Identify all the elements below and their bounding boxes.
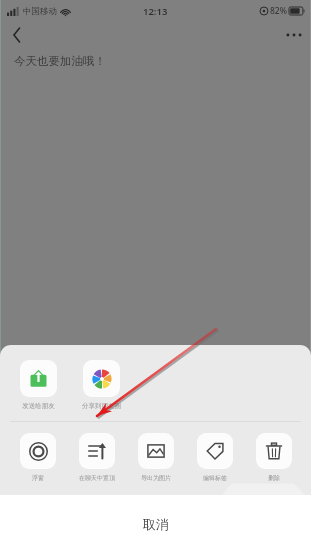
staticText: 82% [270, 5, 287, 17]
staticText: 删除 [268, 474, 280, 482]
staticText: 导出为图片 [141, 474, 171, 482]
button[interactable]: Back [0, 22, 34, 48]
staticText: 取消 [143, 516, 169, 532]
button[interactable]: 删除 [247, 432, 301, 483]
button[interactable]: 分享到朋友圈 [74, 359, 129, 411]
button[interactable]: 取消 [0, 495, 311, 552]
button[interactable]: 导出为图片 [129, 432, 183, 483]
button[interactable]: More options [277, 22, 311, 48]
staticText: 浮窗 [32, 474, 44, 482]
staticText: 分享到朋友圈 [82, 402, 121, 410]
staticText: 在聊天中置顶 [79, 474, 115, 482]
button[interactable]: 浮窗 [10, 432, 65, 483]
staticText: 中国移动 [23, 6, 57, 17]
staticText: 12:13 [143, 5, 168, 18]
staticText: 编辑标签 [203, 474, 227, 482]
button[interactable]: 编辑标签 [188, 432, 242, 483]
staticText: 发送给朋友 [22, 402, 55, 410]
button[interactable]: 在聊天中置顶 [70, 432, 124, 483]
staticText: 今天也要加油哦！ [14, 54, 106, 68]
button[interactable]: 发送给朋友 [11, 359, 66, 411]
